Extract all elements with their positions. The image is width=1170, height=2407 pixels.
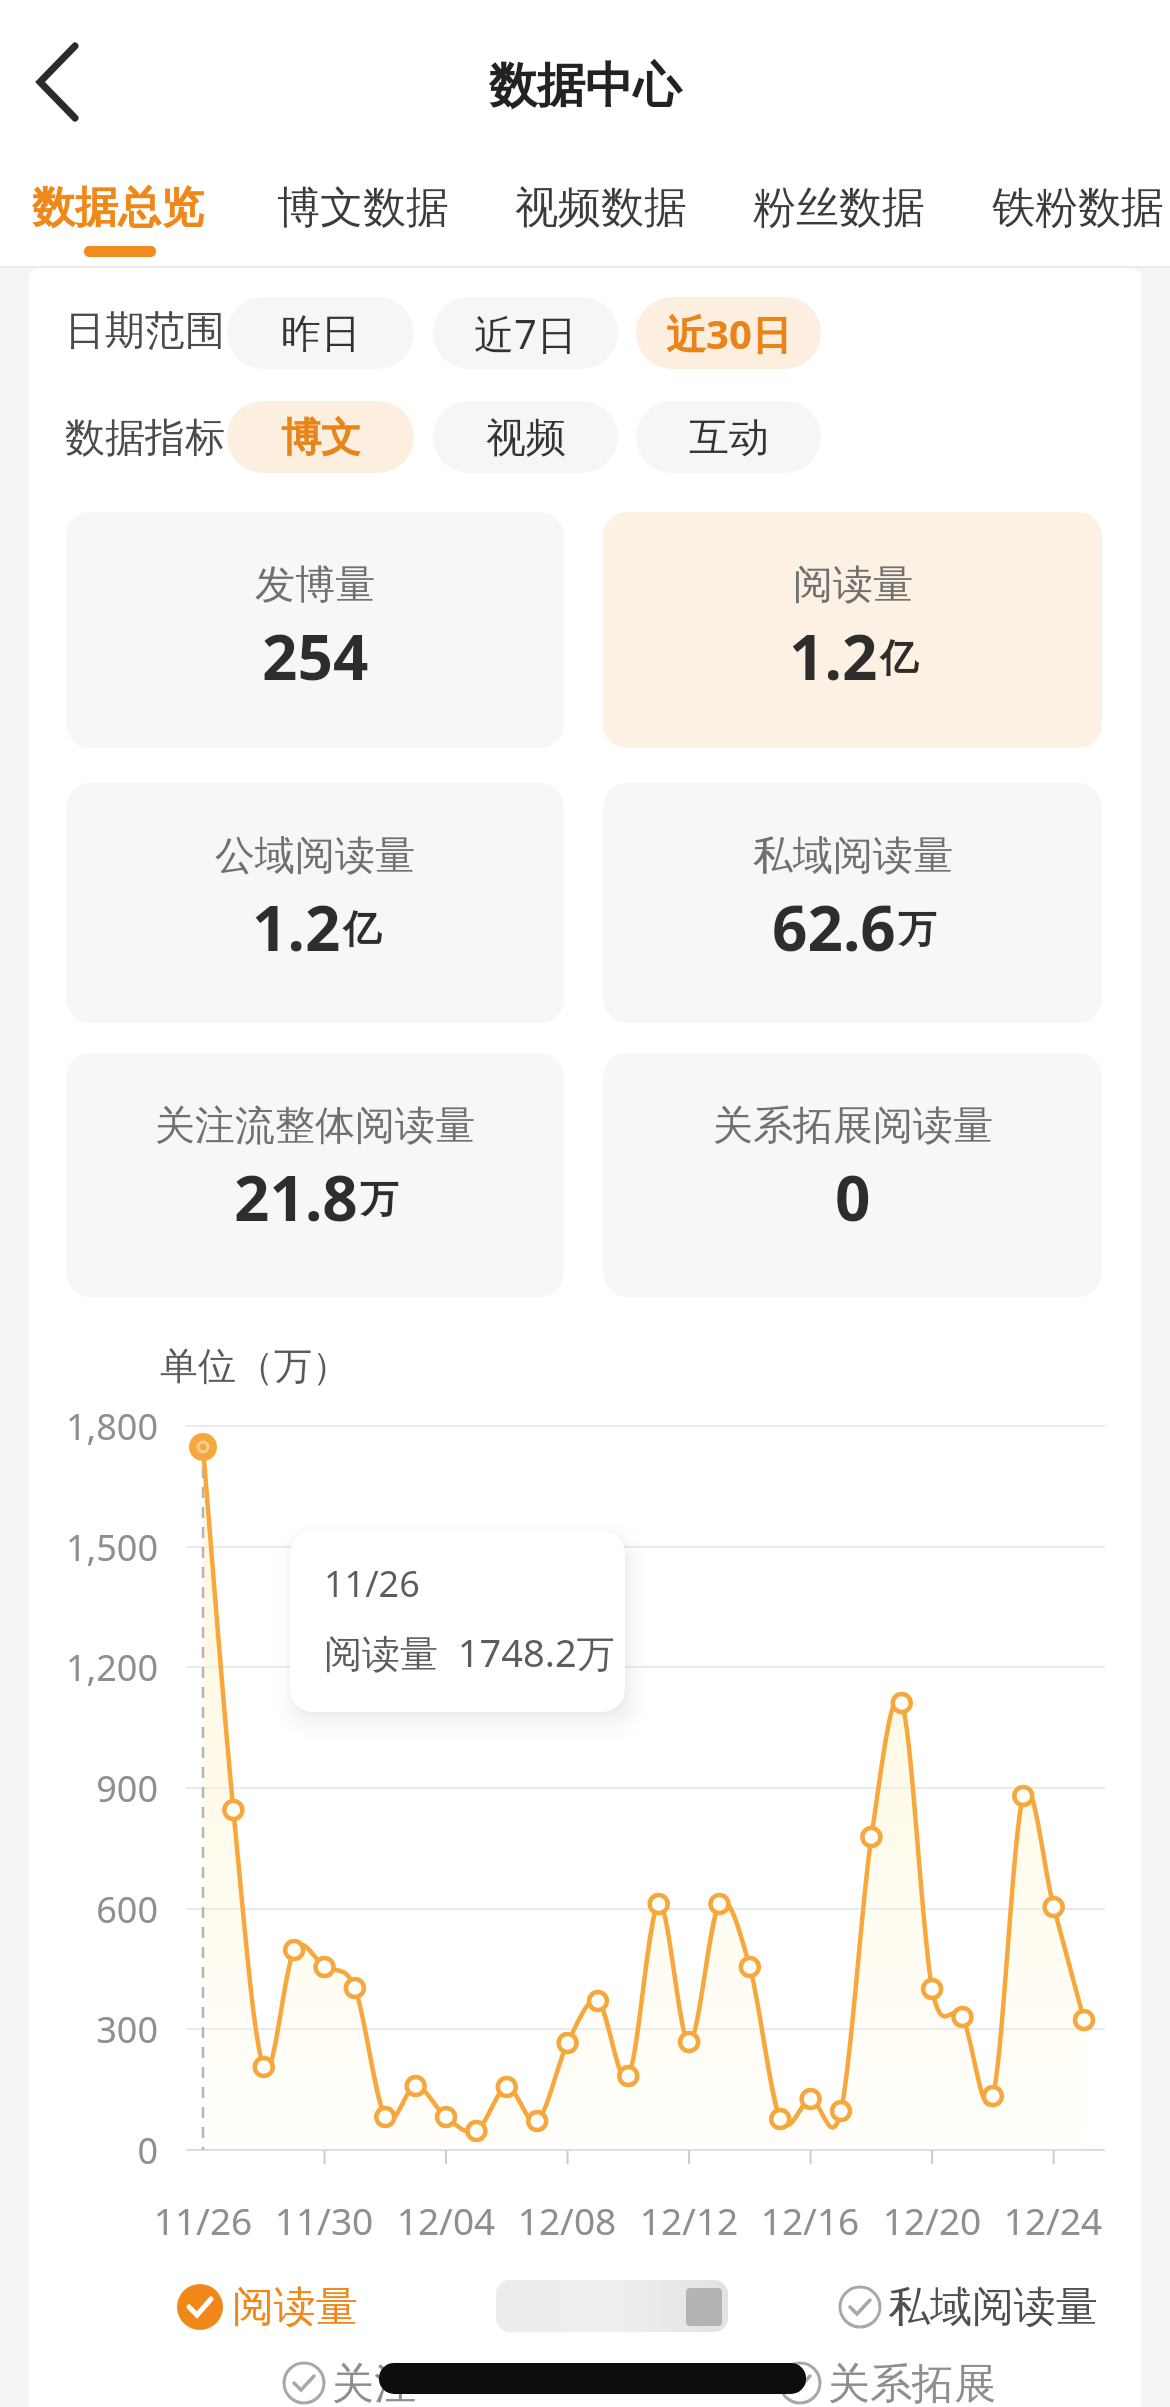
staticText: 亿 <box>880 634 918 682</box>
staticText: 私域阅读量 <box>888 2281 1108 2333</box>
staticText: 11/26 <box>133 2195 273 2245</box>
staticText: 12/16 <box>740 2195 880 2245</box>
staticText: 单位（万） <box>160 1342 360 1390</box>
staticText: 公域阅读量 <box>215 830 415 880</box>
button[interactable]: 发博量 <box>66 512 564 748</box>
staticText: 视频 <box>486 412 566 462</box>
button[interactable]: 博文 <box>227 401 414 473</box>
staticText: 数据总览 <box>28 181 208 235</box>
staticText: 254 <box>262 614 369 690</box>
staticText: 阅读量 1748.2万 <box>324 1626 615 1678</box>
button[interactable]: 数据总览 <box>28 180 208 236</box>
staticText: 关系拓展阅读量 <box>713 1100 993 1150</box>
staticText: 亿 <box>343 905 381 953</box>
button[interactable]: 私域阅读量 <box>603 783 1102 1023</box>
staticText: 私域阅读量 <box>753 830 953 880</box>
staticText: 近7日 <box>474 306 577 361</box>
staticText: 博文数据 <box>273 181 453 235</box>
staticText: 1,800 <box>36 1402 158 1451</box>
staticText: 粉丝数据 <box>749 181 929 235</box>
button[interactable]: 公域阅读量 <box>66 783 564 1023</box>
staticText: 0 <box>835 1155 871 1231</box>
staticText: 关注 <box>332 2358 452 2407</box>
staticText: 12/12 <box>619 2195 759 2245</box>
staticText: 万 <box>360 1175 398 1223</box>
staticText: 关系拓展 <box>828 2358 1018 2407</box>
staticText: 关注流整体阅读量 <box>155 1100 475 1150</box>
staticText: 1.2 <box>789 614 878 690</box>
button[interactable] <box>170 2278 370 2336</box>
button[interactable]: 视频 <box>433 401 618 473</box>
staticText: 12/08 <box>497 2195 637 2245</box>
button[interactable]: 关系拓展阅读量 <box>603 1053 1102 1297</box>
staticText: 12/20 <box>862 2195 1002 2245</box>
button[interactable]: 近30日 <box>636 297 821 369</box>
staticText: 300 <box>36 2005 158 2054</box>
button[interactable]: 视频数据 <box>511 180 691 236</box>
staticText: 21.8 <box>234 1155 358 1231</box>
staticText: 万 <box>898 905 936 953</box>
button[interactable]: 近7日 <box>433 297 618 369</box>
staticText: 12/04 <box>376 2195 516 2245</box>
staticText: 12/24 <box>983 2195 1123 2245</box>
staticText: 铁粉数据 <box>988 181 1168 235</box>
button[interactable]: 互动 <box>636 401 821 473</box>
staticText: 11/30 <box>254 2195 394 2245</box>
staticText: 900 <box>36 1764 158 1813</box>
button[interactable] <box>275 2355 415 2407</box>
button[interactable]: 关注流整体阅读量 <box>66 1053 564 1297</box>
staticText: 阅读量 <box>232 2281 362 2333</box>
staticText: 视频数据 <box>511 181 691 235</box>
button[interactable]: 阅读量 <box>603 512 1102 748</box>
staticText: 1,500 <box>36 1523 158 1572</box>
button[interactable]: 铁粉数据 <box>988 180 1168 236</box>
staticText: 近30日 <box>666 306 792 361</box>
button[interactable] <box>20 40 100 130</box>
button[interactable]: 博文数据 <box>273 180 453 236</box>
staticText: 阅读量 <box>793 559 913 609</box>
staticText: 1,200 <box>36 1643 158 1692</box>
staticText: 数据指标 <box>60 412 230 462</box>
staticText: 数据中心 <box>385 56 785 116</box>
staticText: 1.2 <box>252 885 341 961</box>
staticText: 发博量 <box>255 559 375 609</box>
staticText: 昨日 <box>281 308 361 358</box>
staticText: 互动 <box>689 412 769 462</box>
button[interactable]: 粉丝数据 <box>749 180 929 236</box>
button[interactable] <box>830 2278 1070 2336</box>
staticText: 11/26 <box>324 1559 420 1608</box>
button[interactable]: 昨日 <box>227 297 414 369</box>
staticText: 600 <box>36 1885 158 1934</box>
staticText: 62.6 <box>772 885 896 961</box>
staticText: 0 <box>36 2126 158 2175</box>
staticText: 博文 <box>281 412 361 462</box>
staticText: 日期范围 <box>60 305 230 355</box>
